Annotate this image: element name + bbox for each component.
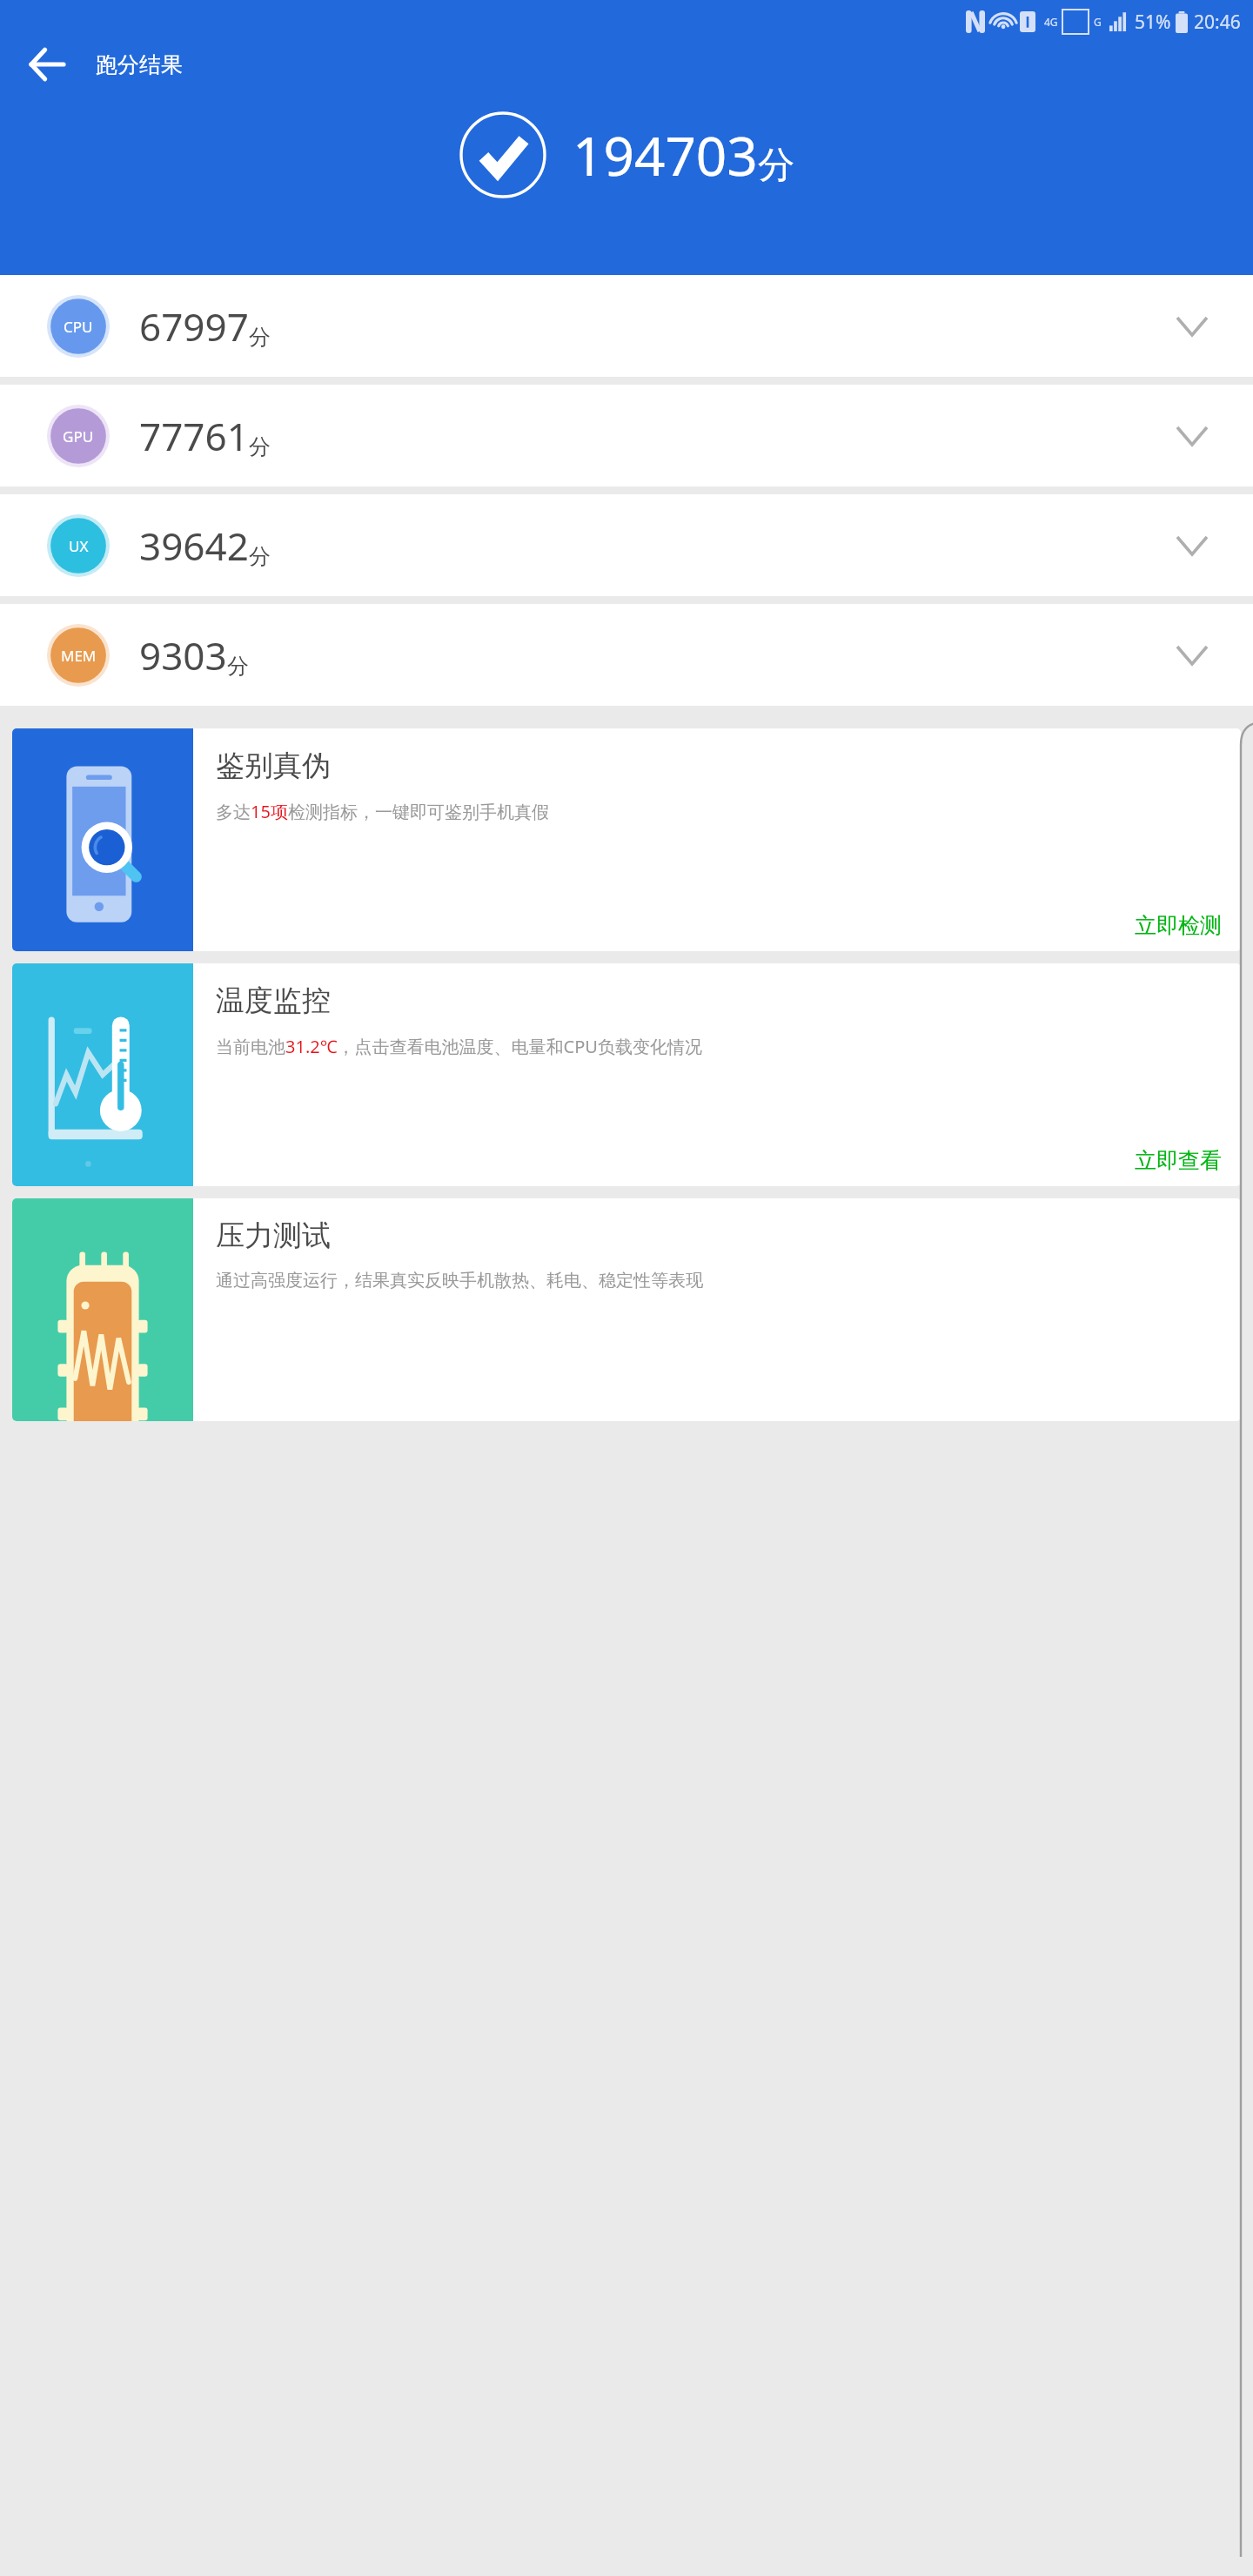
button[interactable]: UX (0, 494, 1253, 596)
staticText: 压力测试 (216, 1218, 331, 1254)
staticText: 跑分结果 (96, 51, 183, 78)
staticText: 39642 (139, 520, 249, 572)
staticText: 9303 (139, 629, 227, 681)
staticText: 分 (249, 543, 271, 570)
button[interactable]: 压力测试 (12, 1198, 1241, 1421)
staticText: 温度监控 (216, 983, 331, 1019)
button[interactable]: 温度监控 (12, 963, 1241, 1186)
button[interactable]: CPU (0, 275, 1253, 377)
staticText: 鉴别真伪 (216, 748, 331, 784)
staticText: MEM (61, 646, 97, 666)
staticText: 20:46 (1194, 10, 1241, 35)
staticText: 分 (249, 324, 271, 351)
staticText: 多达15项检测指标，一键即可鉴别手机真假 (216, 800, 549, 823)
button[interactable]: 立即查看 (1135, 1147, 1222, 1186)
button[interactable]: Back (17, 35, 77, 94)
staticText: 立即检测 (1135, 912, 1222, 939)
button[interactable]: MEM (0, 604, 1253, 706)
button[interactable]: 鉴别真伪 (12, 728, 1241, 951)
other: Expand MEM (1171, 634, 1213, 676)
other: Expand GPU (1171, 415, 1213, 457)
staticText: 67997 (139, 300, 249, 352)
staticText: CPU (64, 317, 93, 337)
staticText: 194703 (573, 118, 758, 191)
staticText: 77761 (139, 410, 249, 462)
staticText: 4G (1044, 15, 1058, 29)
staticText: 立即查看 (1135, 1147, 1222, 1174)
button[interactable]: GPU (0, 385, 1253, 486)
other: Expand CPU (1171, 305, 1213, 347)
staticText: GPU (63, 426, 94, 446)
staticText: 通过高强度运行，结果真实反映手机散热、耗电、稳定性等表现 (216, 1270, 703, 1291)
staticText: 51% (1135, 10, 1171, 35)
staticText: UX (69, 536, 89, 556)
other: Expand UX (1171, 525, 1213, 567)
staticText: 当前电池31.2℃，点击查看电池温度、电量和CPU负载变化情况 (216, 1035, 702, 1058)
staticText: 分 (227, 653, 249, 680)
staticText: G (1094, 15, 1102, 29)
button[interactable]: 立即检测 (1135, 912, 1222, 951)
staticText: 分 (249, 433, 271, 460)
staticText: 分 (758, 143, 794, 189)
